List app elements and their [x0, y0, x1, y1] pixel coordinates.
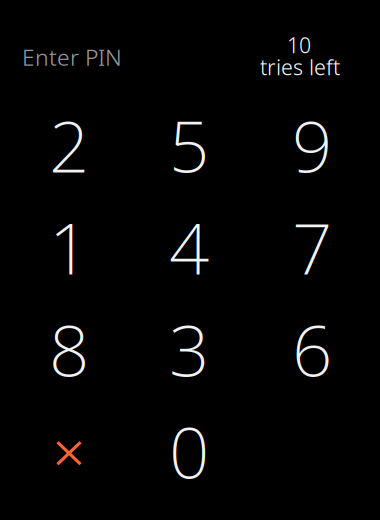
- button[interactable]: 6: [250, 298, 374, 400]
- staticText: 5: [169, 97, 209, 193]
- button[interactable]: 3: [127, 298, 251, 400]
- staticText: 0: [169, 403, 209, 499]
- button[interactable]: 0: [127, 400, 251, 502]
- staticText: 10: [287, 30, 311, 60]
- staticText: 1: [49, 199, 89, 295]
- staticText: 8: [49, 301, 89, 397]
- staticText: Enter PIN: [22, 42, 122, 72]
- staticText: 7: [292, 199, 332, 295]
- staticText: 9: [292, 97, 332, 193]
- button[interactable]: 8: [7, 298, 131, 400]
- staticText: 3: [169, 301, 209, 397]
- staticText: 4: [169, 199, 209, 295]
- button[interactable]: Delete: [7, 400, 131, 502]
- button[interactable]: 1: [7, 196, 131, 298]
- button[interactable]: 7: [250, 196, 374, 298]
- button[interactable]: 4: [127, 196, 251, 298]
- staticText: tries left: [260, 52, 340, 82]
- staticText: 6: [292, 301, 332, 397]
- button[interactable]: 9: [250, 94, 374, 196]
- button[interactable]: 5: [127, 94, 251, 196]
- staticText: 2: [49, 97, 89, 193]
- button[interactable]: 2: [7, 94, 131, 196]
